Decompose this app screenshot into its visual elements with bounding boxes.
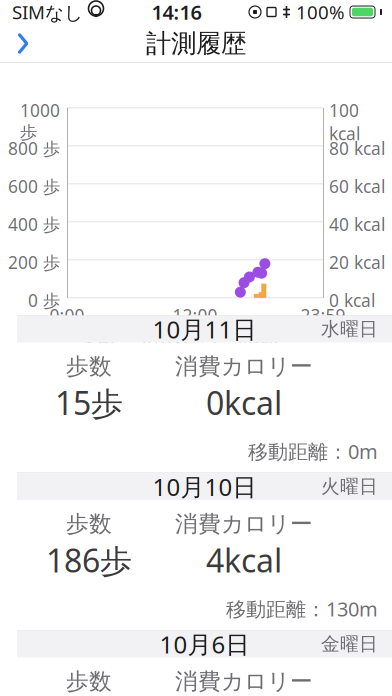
button[interactable]: 火曜日 bbox=[0, 473, 392, 500]
staticText: 水曜日 bbox=[321, 318, 378, 340]
button[interactable]: 歩数 bbox=[0, 500, 392, 630]
staticText: 20 kcal bbox=[329, 251, 385, 274]
staticText: 消費カロリー(kcal) bbox=[142, 326, 278, 347]
staticText: 400 歩 bbox=[8, 213, 60, 236]
staticText: 100% bbox=[296, 0, 345, 24]
staticText: 10月11日 bbox=[152, 313, 256, 345]
staticText: 15歩 bbox=[55, 381, 123, 424]
staticText: 消費カロリー bbox=[175, 510, 313, 538]
staticText: 10月10日 bbox=[152, 471, 256, 503]
staticText: 0 歩 bbox=[28, 289, 60, 312]
staticText: 歩数 bbox=[66, 353, 112, 380]
staticText: 1000 歩 bbox=[20, 99, 60, 143]
staticText: 移動距離：130m bbox=[226, 595, 378, 622]
staticText: 金曜日 bbox=[321, 633, 378, 655]
staticText: 60 kcal bbox=[329, 175, 385, 198]
staticText: 14:16 bbox=[151, 0, 201, 25]
staticText: 歩数 bbox=[66, 510, 112, 538]
staticText: 消費カロリー bbox=[175, 353, 313, 380]
staticText: 10月6日 bbox=[159, 628, 249, 660]
staticText: 23:59 bbox=[300, 304, 345, 327]
staticText: 消費カロリー bbox=[175, 668, 313, 695]
staticText: 200 歩 bbox=[8, 251, 60, 274]
staticText: 100 kcal bbox=[329, 99, 360, 145]
button[interactable]: 戻る bbox=[6, 24, 40, 62]
staticText: 186歩 bbox=[46, 539, 132, 581]
button[interactable]: 水曜日 bbox=[0, 316, 392, 343]
button[interactable]: 金曜日 bbox=[0, 631, 392, 658]
staticText: 4kcal bbox=[206, 539, 282, 581]
staticText: 移動距離：0m bbox=[248, 438, 378, 464]
staticText: 歩数 bbox=[82, 327, 114, 346]
button[interactable]: 歩数 bbox=[0, 343, 392, 472]
staticText: 計測履歴 bbox=[146, 28, 246, 59]
button[interactable]: 歩数 bbox=[0, 658, 392, 696]
staticText: 0 kcal bbox=[329, 289, 375, 312]
staticText: 80 kcal bbox=[329, 137, 385, 160]
staticText: 600 歩 bbox=[8, 175, 60, 198]
staticText: SIMなし bbox=[12, 0, 83, 24]
staticText: 800 歩 bbox=[8, 137, 60, 160]
staticText: 12:00 bbox=[172, 304, 217, 327]
staticText: 0kcal bbox=[206, 381, 282, 424]
staticText: 歩数 bbox=[66, 668, 112, 695]
staticText: 40 kcal bbox=[329, 213, 385, 236]
staticText: 0:00 bbox=[49, 304, 84, 327]
staticText: 火曜日 bbox=[321, 475, 378, 498]
